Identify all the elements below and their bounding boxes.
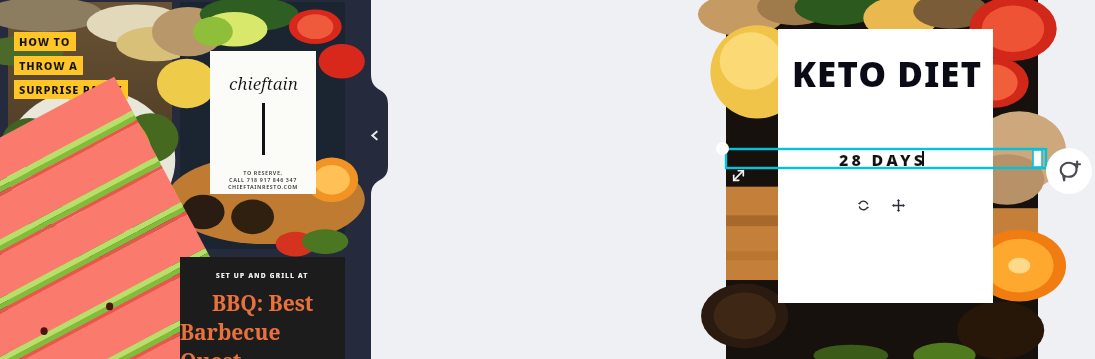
staticText: SET UP AND GRILL AT — [216, 271, 309, 280]
button[interactable]: Move — [886, 193, 911, 218]
staticText: 28 DAYS — [839, 149, 927, 171]
staticText: BBQ: Best — [212, 289, 314, 318]
staticText: chieftain — [229, 72, 298, 95]
button[interactable]: Watermelon template — [8, 257, 172, 359]
staticText: HOW TO — [19, 34, 71, 49]
staticText: (AND NOT GET CAUGHT) — [41, 226, 139, 236]
button[interactable]: Surprise party template — [8, 2, 172, 249]
button[interactable]: Rotate — [851, 193, 876, 218]
button[interactable]: Collapse panel — [360, 118, 388, 152]
staticText: SURPRISE PARTY — [19, 82, 123, 97]
button[interactable]: Add comment — [1046, 148, 1092, 194]
button[interactable]: BBQ template — [180, 257, 345, 359]
staticText: CHIEFTAINRESTO.COM — [228, 183, 298, 190]
staticText: Barbecue Quest — [180, 318, 345, 359]
staticText: TO RESERVE, — [243, 169, 283, 176]
button[interactable]: Resize right — [1033, 150, 1042, 167]
button[interactable]: Chieftain template — [180, 2, 345, 249]
button[interactable]: Resize — [728, 165, 748, 185]
staticText: THROW A — [19, 58, 78, 73]
button[interactable]: Resize left — [716, 142, 729, 155]
staticText: KETO DIET — [792, 50, 983, 98]
staticText: CALL 718 917 846 347 — [229, 176, 297, 183]
